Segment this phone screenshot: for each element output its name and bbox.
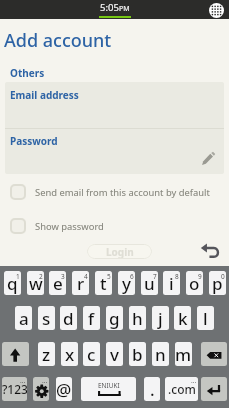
staticText: t <box>100 272 107 295</box>
staticText: Show password <box>35 220 104 233</box>
staticText: r <box>77 272 85 295</box>
button[interactable]: v <box>106 342 123 366</box>
button[interactable]: Send email from this account by default <box>10 184 210 200</box>
staticText: ENIUKI <box>98 381 120 390</box>
staticText: k <box>178 307 188 330</box>
staticText: 5 <box>107 272 111 281</box>
staticText: e <box>53 272 63 295</box>
button[interactable]: ··· <box>33 377 49 401</box>
staticText: 9 <box>198 272 202 281</box>
staticText: 5:05 <box>100 1 119 14</box>
button[interactable]: f <box>83 306 100 330</box>
staticText: 1 <box>16 272 20 281</box>
button[interactable]: Apps <box>209 3 224 18</box>
button[interactable]: j <box>152 306 169 330</box>
button[interactable]: i <box>163 271 180 295</box>
staticText: @ <box>56 378 72 401</box>
button[interactable]: u <box>141 271 158 295</box>
button[interactable]: k <box>174 306 191 330</box>
staticText: ··· <box>20 378 26 387</box>
staticText: ··· <box>191 378 197 387</box>
button[interactable]: p <box>209 271 226 295</box>
button[interactable] <box>201 342 227 366</box>
button[interactable]: Login <box>87 244 152 259</box>
staticText: Login <box>106 245 134 259</box>
staticText: x <box>65 343 75 366</box>
staticText: y <box>122 272 131 295</box>
button[interactable]: g <box>106 306 123 330</box>
staticText: l <box>203 307 208 330</box>
staticText: n <box>155 343 166 366</box>
button[interactable]: o <box>186 271 203 295</box>
staticText: w <box>29 272 43 295</box>
staticText: v <box>110 343 119 366</box>
button[interactable]: x <box>61 342 78 366</box>
staticText: s <box>42 307 51 330</box>
button[interactable]: Edit <box>201 151 216 166</box>
button[interactable]: n <box>152 342 169 366</box>
button[interactable]: w <box>27 271 44 295</box>
staticText: q <box>7 272 18 295</box>
staticText: u <box>144 272 155 295</box>
staticText: 3 <box>61 272 65 281</box>
button[interactable]: r <box>72 271 89 295</box>
button[interactable]: c <box>83 342 100 366</box>
button[interactable]: q <box>4 271 21 295</box>
button[interactable]: . <box>144 377 160 401</box>
button[interactable]: ENIUKI <box>81 377 136 401</box>
button[interactable]: ?123 <box>2 377 27 401</box>
button[interactable]: m <box>175 342 192 366</box>
staticText: i <box>169 272 174 295</box>
button[interactable]: l <box>197 306 214 330</box>
staticText: . <box>150 378 155 401</box>
button[interactable]: @ <box>56 377 72 401</box>
staticText: Others <box>10 66 45 80</box>
staticText: f <box>88 307 95 330</box>
button[interactable]: b <box>129 342 146 366</box>
button[interactable]: e <box>49 271 66 295</box>
button[interactable]: h <box>129 306 146 330</box>
button[interactable]: .com <box>165 377 198 401</box>
staticText: Email address <box>10 88 79 102</box>
staticText: Password <box>10 134 58 148</box>
staticText: g <box>109 307 120 330</box>
staticText: c <box>87 343 96 366</box>
staticText: o <box>189 272 200 295</box>
staticText: 6 <box>130 272 134 281</box>
staticText: Send email from this account by default <box>35 186 210 199</box>
staticText: 0 <box>221 272 225 281</box>
staticText: Add account <box>4 28 112 53</box>
button[interactable]: Password <box>5 128 224 174</box>
staticText: 8 <box>175 272 179 281</box>
button[interactable]: z <box>38 342 55 366</box>
staticText: a <box>19 307 29 330</box>
button[interactable]: t <box>95 271 112 295</box>
staticText: .com <box>168 381 196 397</box>
button[interactable]: s <box>38 306 55 330</box>
button[interactable]: a <box>15 306 32 330</box>
staticText: ··· <box>42 378 48 387</box>
button[interactable]: Show password <box>10 218 104 234</box>
staticText: m <box>175 343 192 366</box>
staticText: z <box>42 343 51 366</box>
button[interactable] <box>201 377 227 401</box>
button[interactable] <box>2 342 29 366</box>
button[interactable]: Email address <box>5 82 224 128</box>
button[interactable]: d <box>60 306 77 330</box>
staticText: PM <box>119 4 130 14</box>
staticText: h <box>132 307 143 330</box>
staticText: p <box>212 272 223 295</box>
button[interactable]: Back <box>200 242 221 258</box>
staticText: 4 <box>84 272 88 281</box>
staticText: ?123 <box>2 381 27 397</box>
staticText: d <box>63 307 74 330</box>
button[interactable]: y <box>118 271 135 295</box>
staticText: b <box>132 343 143 366</box>
staticText: 7 <box>153 272 157 281</box>
staticText: j <box>158 307 163 330</box>
staticText: 2 <box>39 272 43 281</box>
